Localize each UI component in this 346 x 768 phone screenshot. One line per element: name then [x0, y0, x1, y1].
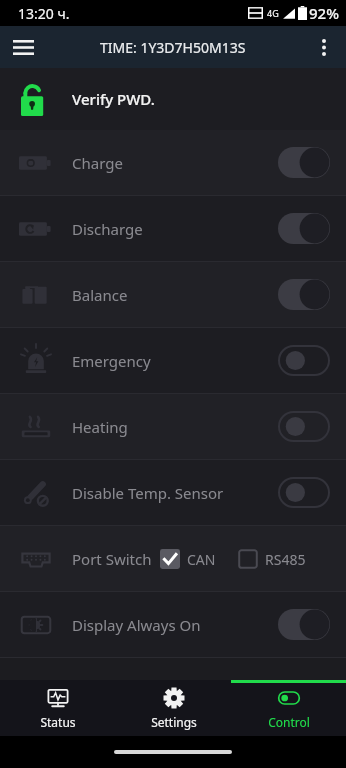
staticText: 4G: [267, 7, 279, 19]
button[interactable]: Balance: [0, 262, 346, 327]
staticText: Emergency: [72, 351, 278, 371]
button[interactable]: More options: [302, 26, 346, 68]
button[interactable]: Control: [231, 680, 346, 736]
button[interactable]: Heating: [0, 394, 346, 459]
staticText: Verify PWD.: [72, 89, 155, 109]
button[interactable]: Status: [0, 680, 116, 736]
button[interactable]: Disable Temp. Sensor toggle: [278, 477, 330, 508]
button[interactable]: Charge: [0, 130, 346, 195]
staticText: Display Always On: [72, 615, 278, 635]
button[interactable]: Disable Temp. Sensor: [0, 460, 346, 525]
button[interactable]: Settings: [116, 680, 231, 736]
staticText: Settings: [151, 714, 197, 730]
button[interactable]: CAN: [160, 549, 216, 569]
button[interactable]: Heating toggle: [278, 411, 330, 442]
button[interactable]: Emergency toggle: [278, 345, 330, 376]
staticText: Heating: [72, 417, 278, 437]
staticText: Discharge: [72, 219, 278, 239]
staticText: Disable Temp. Sensor: [72, 483, 278, 503]
button[interactable]: Display Always On: [0, 592, 346, 657]
staticText: TIME: 1Y3D7H50M13S: [100, 38, 246, 57]
button[interactable]: Open navigation menu: [0, 26, 46, 68]
button[interactable]: Balance toggle: [278, 279, 330, 310]
staticText: 13:20 ч.: [18, 4, 70, 23]
button[interactable]: Charge toggle: [278, 147, 330, 178]
staticText: Balance: [72, 285, 278, 305]
button[interactable]: Display Always On toggle: [278, 609, 330, 640]
button[interactable]: RS485: [238, 549, 306, 569]
staticText: Port Switch: [72, 549, 152, 569]
staticText: CAN: [187, 550, 216, 569]
staticText: Control: [268, 714, 310, 730]
button[interactable]: Discharge: [0, 196, 346, 261]
button[interactable]: Discharge toggle: [278, 213, 330, 244]
staticText: RS485: [265, 550, 306, 569]
staticText: Charge: [72, 153, 278, 173]
staticText: Status: [40, 714, 76, 730]
staticText: 92%: [309, 3, 339, 23]
button[interactable]: Emergency: [0, 328, 346, 393]
button[interactable]: Verify PWD.: [0, 68, 346, 130]
